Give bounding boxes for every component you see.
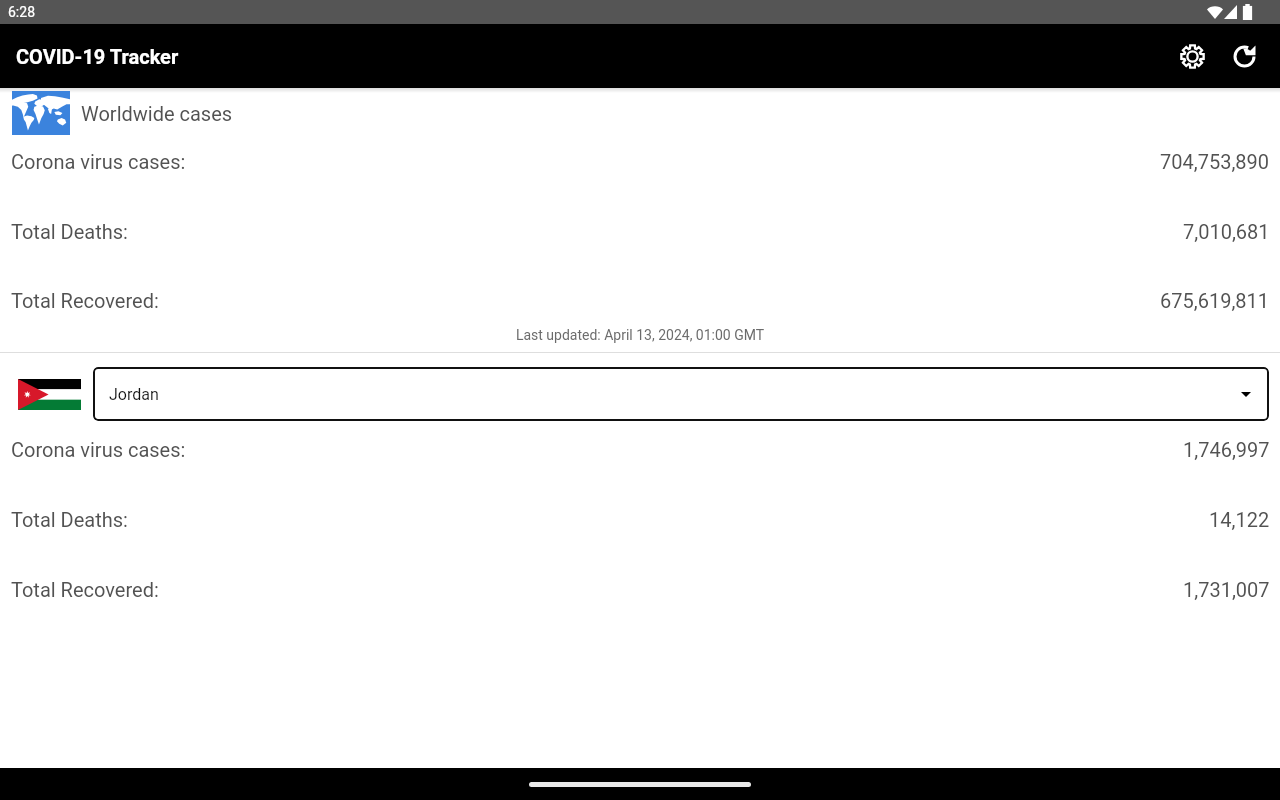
staticText: Last updated: April 13, 2024, 01:00 GMT [0, 327, 1280, 343]
staticText: Total Deaths: [11, 508, 128, 531]
button[interactable]: Corona virus cases: [0, 149, 1280, 173]
button[interactable]: Refresh [1220, 32, 1268, 80]
staticText: 1,731,007 [1183, 578, 1270, 601]
staticText: Total Recovered: [11, 578, 159, 601]
button[interactable]: Jordan [93, 367, 1269, 421]
staticText: Corona virus cases: [11, 150, 186, 173]
staticText: Jordan [109, 385, 159, 404]
button[interactable]: Corona virus cases: [0, 437, 1280, 461]
button[interactable]: Settings [1168, 32, 1216, 80]
staticText: 1,746,997 [1183, 438, 1270, 461]
staticText: 6:28 [8, 4, 35, 20]
button[interactable]: Total Recovered: [0, 577, 1280, 601]
staticText: 14,122 [1209, 508, 1270, 531]
staticText: Worldwide cases [81, 102, 233, 125]
staticText: 675,619,811 [1160, 289, 1270, 312]
staticText: 7,010,681 [1183, 220, 1270, 243]
button[interactable]: Total Deaths: [0, 219, 1280, 243]
staticText: COVID-19 Tracker [16, 45, 179, 68]
staticText: Corona virus cases: [11, 438, 186, 461]
button[interactable]: Total Deaths: [0, 507, 1280, 531]
staticText: Total Deaths: [11, 220, 128, 243]
staticText: Total Recovered: [11, 289, 159, 312]
button[interactable]: Total Recovered: [0, 288, 1280, 312]
staticText: 704,753,890 [1160, 150, 1270, 173]
